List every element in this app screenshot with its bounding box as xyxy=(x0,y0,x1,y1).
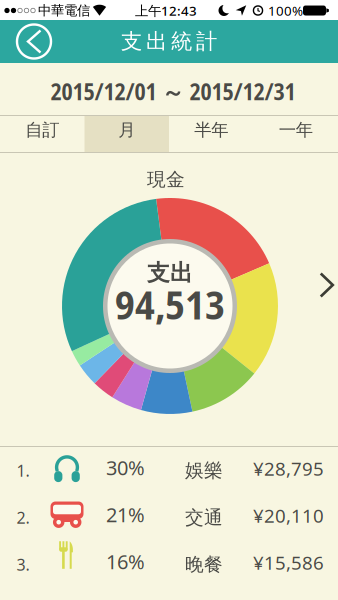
staticText: 交通 xyxy=(185,506,223,529)
button[interactable]: 一年 xyxy=(253,116,338,152)
button[interactable]: 月 xyxy=(84,116,169,152)
staticText: 100% xyxy=(268,2,303,19)
staticText: ¥28,795 xyxy=(253,456,324,481)
staticText: 支出 xyxy=(147,259,193,287)
staticText: 晚餐 xyxy=(185,553,223,576)
staticText: 中華電信 xyxy=(38,2,90,19)
button[interactable]: 2015/12/01 ～ 2015/12/31 xyxy=(0,63,338,115)
button[interactable]: 3. xyxy=(0,541,338,588)
staticText: 支出統計 xyxy=(121,28,217,55)
staticText: 一年 xyxy=(279,119,313,141)
staticText: 3. xyxy=(16,554,29,575)
staticText: 30% xyxy=(106,454,145,481)
button[interactable]: 自訂 xyxy=(0,116,84,152)
staticText: 現金 xyxy=(147,168,185,191)
staticText: 月 xyxy=(118,119,135,141)
button[interactable]: 半年 xyxy=(169,116,253,152)
staticText: 21% xyxy=(106,501,145,528)
staticText: 2. xyxy=(16,507,29,528)
button[interactable]: 2. xyxy=(0,494,338,541)
staticText: ¥20,110 xyxy=(253,503,324,528)
staticText: 娛樂 xyxy=(185,459,223,482)
staticText: 16% xyxy=(106,548,145,575)
staticText: 自訂 xyxy=(25,119,59,141)
button[interactable]: Back xyxy=(16,23,52,59)
button[interactable]: Next chart xyxy=(321,273,333,296)
staticText: 2015/12/01 ～ 2015/12/31 xyxy=(50,76,295,107)
staticText: 上午12:43 xyxy=(135,2,197,19)
staticText: 94,513 xyxy=(115,277,225,331)
staticText: 1. xyxy=(16,460,29,481)
staticText: 半年 xyxy=(194,119,228,141)
button[interactable]: 1. xyxy=(0,447,338,494)
staticText: ¥15,586 xyxy=(253,550,324,575)
